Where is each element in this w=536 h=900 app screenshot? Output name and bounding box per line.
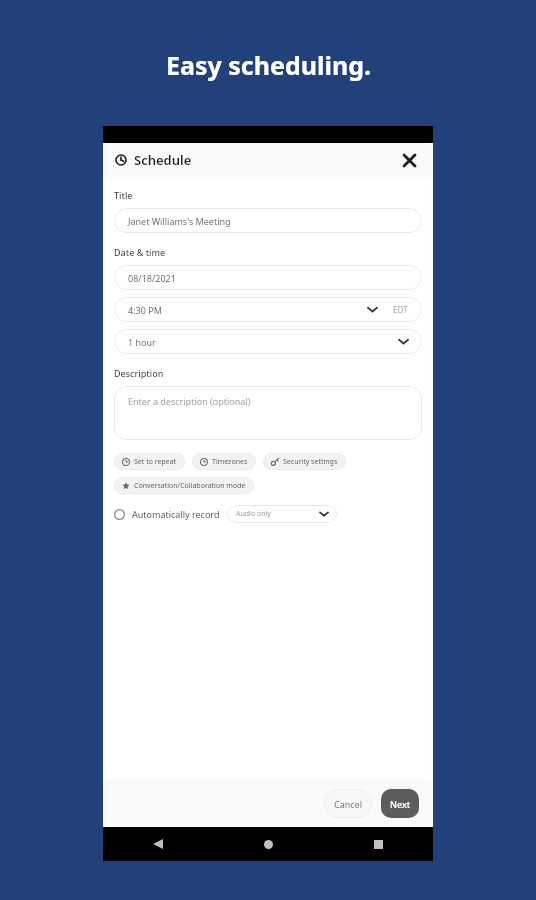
staticText: Timezones	[212, 457, 248, 467]
staticText: Conversation/Collaboration mode	[134, 481, 246, 491]
button[interactable]: Janet Williams's Meeting	[114, 208, 422, 233]
staticText: Audio only	[236, 509, 271, 519]
button[interactable]: Recents	[366, 832, 390, 856]
staticText: Security settings	[283, 457, 338, 467]
button[interactable]: Back	[146, 832, 170, 856]
button[interactable]: Cancel	[324, 789, 372, 818]
button[interactable]: Audio only	[227, 505, 337, 523]
staticText: Schedule	[134, 151, 192, 169]
staticText: 1 hour	[128, 336, 156, 348]
staticText: Title	[114, 189, 133, 201]
staticText: Janet Williams's Meeting	[128, 215, 231, 227]
button[interactable]: 08/18/2021	[114, 265, 422, 290]
button[interactable]: Close	[397, 148, 421, 172]
button[interactable]: Security settings	[263, 453, 346, 470]
button[interactable]: Enter a description (optional)	[114, 386, 422, 440]
staticText: Enter a description (optional)	[128, 395, 251, 407]
button[interactable]: Home	[256, 832, 280, 856]
button[interactable]: Conversation/Collaboration mode	[114, 477, 254, 494]
staticText: Description	[114, 367, 164, 379]
staticText: 4:30 PM	[128, 304, 162, 316]
button[interactable]: Set to repeat	[114, 453, 185, 470]
button[interactable]: Timezones	[192, 453, 256, 470]
staticText: Cancel	[334, 798, 363, 810]
button[interactable]: 4:30 PM	[114, 297, 422, 322]
button[interactable]: Next	[381, 789, 419, 818]
button[interactable]: 1 hour	[114, 329, 422, 354]
staticText: 08/18/2021	[128, 272, 176, 284]
staticText: Automatically record	[132, 508, 220, 520]
staticText: Easy scheduling.	[166, 48, 371, 82]
staticText: EDT	[393, 304, 408, 315]
button[interactable]: Automatically record	[114, 505, 337, 523]
staticText: Next	[390, 798, 411, 810]
staticText: Date & time	[114, 246, 166, 258]
staticText: Set to repeat	[134, 457, 177, 467]
